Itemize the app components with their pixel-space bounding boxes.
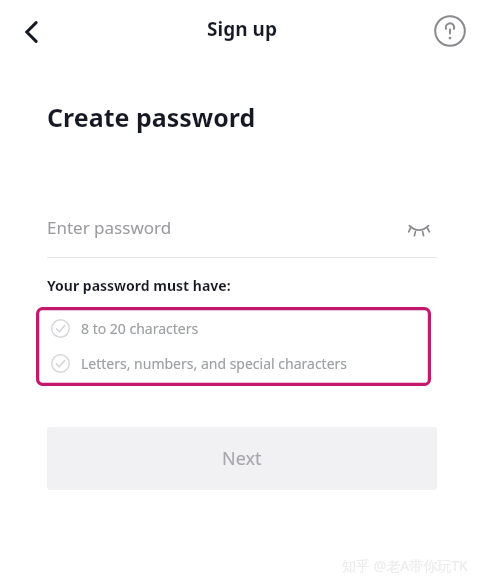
staticText: Your password must have: xyxy=(47,276,231,295)
button[interactable]: Enter password xyxy=(47,203,437,258)
button[interactable]: Letters, numbers, and special characters xyxy=(51,348,431,379)
button[interactable]: Show password xyxy=(401,210,437,246)
button[interactable]: 8 to 20 characters xyxy=(51,313,431,344)
button[interactable]: Help xyxy=(428,9,472,53)
staticText: Enter password xyxy=(47,216,172,239)
staticText: Letters, numbers, and special characters xyxy=(81,354,348,373)
staticText: Sign up xyxy=(207,16,277,42)
button[interactable]: Next xyxy=(47,427,437,490)
staticText: Next xyxy=(222,446,262,471)
staticText: 8 to 20 characters xyxy=(81,319,199,338)
staticText: Create password xyxy=(47,100,256,134)
button[interactable]: Back xyxy=(10,10,54,54)
staticText: 知乎 @老A带你玩TK xyxy=(342,556,468,575)
